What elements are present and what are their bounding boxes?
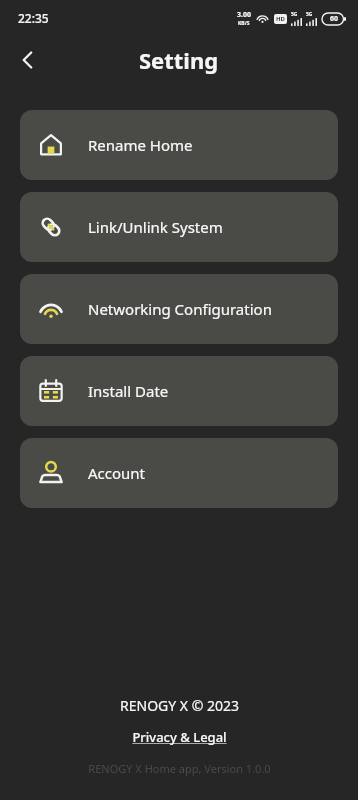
- staticText: 3.00: [237, 10, 251, 20]
- staticText: 5G: [306, 11, 313, 18]
- staticText: 22:35: [18, 10, 49, 26]
- staticText: 60: [330, 14, 339, 24]
- button[interactable]: Back: [8, 40, 48, 80]
- staticText: HD: [276, 15, 285, 23]
- staticText: RENOGY X © 2023: [120, 696, 239, 715]
- button[interactable]: Networking Configuration: [20, 274, 338, 344]
- staticText: 5G: [291, 11, 298, 18]
- button[interactable]: Account: [20, 438, 338, 508]
- staticText: Setting: [139, 45, 219, 75]
- staticText: Account: [88, 463, 146, 483]
- staticText: Install Date: [88, 381, 169, 401]
- button[interactable]: Link/Unlink System: [20, 192, 338, 262]
- staticText: Networking Configuration: [88, 299, 272, 319]
- button[interactable]: Install Date: [20, 356, 338, 426]
- staticText: Rename Home: [88, 135, 193, 155]
- staticText: Link/Unlink System: [88, 217, 223, 237]
- button[interactable]: Rename Home: [20, 110, 338, 180]
- button[interactable]: Privacy & Legal: [128, 726, 231, 748]
- staticText: KB/S: [238, 20, 250, 27]
- staticText: Privacy & Legal: [132, 728, 227, 746]
- staticText: RENOGY X Home app, Version 1.0.0: [88, 761, 271, 776]
